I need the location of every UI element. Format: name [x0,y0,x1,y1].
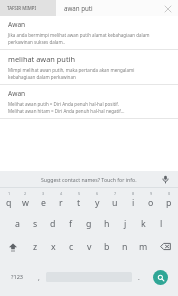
staticText: q [6,197,12,209]
staticText: t [77,197,81,209]
staticText: 3 [42,191,45,196]
button[interactable]: n [116,235,134,258]
staticText: f [69,218,73,230]
staticText: d [50,218,56,230]
staticText: e [41,197,46,209]
button[interactable]: v [80,235,98,258]
button[interactable]: 0 [160,188,178,212]
staticText: Awan [8,89,26,98]
button[interactable]: d [44,212,62,235]
staticText: Jika anda bermimpi melihat awan putih al… [8,32,150,38]
button[interactable]: Shift [0,235,26,258]
button[interactable]: ?123 [3,266,32,288]
staticText: b [104,241,110,253]
button[interactable]: awan puti [56,0,178,16]
staticText: 6 [96,191,99,196]
button[interactable]: 4 [52,188,70,212]
staticText: x [51,241,56,253]
staticText: Mimpi melihat awan putih, maka pertanda … [8,67,135,73]
button[interactable]: z [26,235,44,258]
button[interactable]: 9 [142,188,160,212]
staticText: 8 [132,191,135,196]
button[interactable]: TAFSIR MIMPI [0,0,56,16]
button[interactable]: l [152,212,170,235]
button[interactable]: Voice input [159,173,171,185]
staticText: u [112,197,118,209]
staticText: 2 [24,191,27,196]
button[interactable]: x [44,235,62,258]
button[interactable]: c [62,235,80,258]
button[interactable]: Awan [0,16,178,49]
staticText: a [15,218,20,230]
staticText: . [138,273,140,282]
staticText: Melihat awan putih = Diri Anda penuh hal… [8,101,119,107]
staticText: 0 [168,191,171,196]
button[interactable]: k [134,212,152,235]
staticText: h [104,218,110,230]
staticText: o [148,197,154,209]
button[interactable]: j [116,212,134,235]
staticText: i [132,197,135,209]
staticText: n [122,241,128,253]
button[interactable]: b [98,235,116,258]
staticText: 9 [150,191,153,196]
staticText: z [33,241,38,253]
staticText: Melihat awan hitam = Diri Anda penuh hal… [8,108,125,114]
staticText: k [141,218,146,230]
staticText: v [87,241,92,253]
button[interactable]: 3 [34,188,52,212]
button[interactable]: melihat awan putih [0,50,178,84]
staticText: ?123 [11,273,24,281]
staticText: p [166,197,172,209]
button[interactable]: 6 [88,188,106,212]
button[interactable]: 7 [106,188,124,212]
button[interactable]: Clear search [162,3,173,14]
button[interactable]: 1 [0,188,17,212]
button[interactable]: f [62,212,80,235]
staticText: kebahagiaan dalam perkawinan [8,74,76,80]
staticText: g [86,218,92,230]
staticText: melihat awan putih [8,54,76,64]
button[interactable]: . [132,266,146,288]
button[interactable]: 2 [17,188,34,212]
staticText: s [33,218,38,230]
staticText: 7 [114,191,117,196]
button[interactable]: h [98,212,116,235]
staticText: perkawinan sukses dalam.. [8,39,66,45]
staticText: m [139,241,148,253]
button[interactable]: 5 [70,188,88,212]
button[interactable]: 8 [124,188,142,212]
button[interactable]: Search [153,270,168,285]
staticText: c [69,241,74,253]
staticText: w [22,197,29,209]
staticText: awan puti [64,4,93,12]
staticText: 1 [8,191,11,196]
button[interactable]: g [80,212,98,235]
staticText: Suggest contact names? Touch for info. [41,176,137,183]
staticText: l [160,218,163,230]
staticText: , [38,273,40,282]
staticText: y [95,197,100,209]
staticText: TAFSIR MIMPI [7,5,37,11]
staticText: r [59,197,63,209]
button[interactable]: Awan [0,85,178,118]
button[interactable]: a [8,212,26,235]
button[interactable]: , [32,266,46,288]
button[interactable]: m [134,235,152,258]
button[interactable]: Backspace [152,235,178,258]
staticText: 5 [78,191,81,196]
staticText: Awan [8,20,26,29]
staticText: j [124,218,127,230]
staticText: 4 [60,191,63,196]
button[interactable]: Space [46,266,132,288]
button[interactable]: s [26,212,44,235]
button[interactable]: Suggest contact names? Touch for info. [0,171,178,187]
